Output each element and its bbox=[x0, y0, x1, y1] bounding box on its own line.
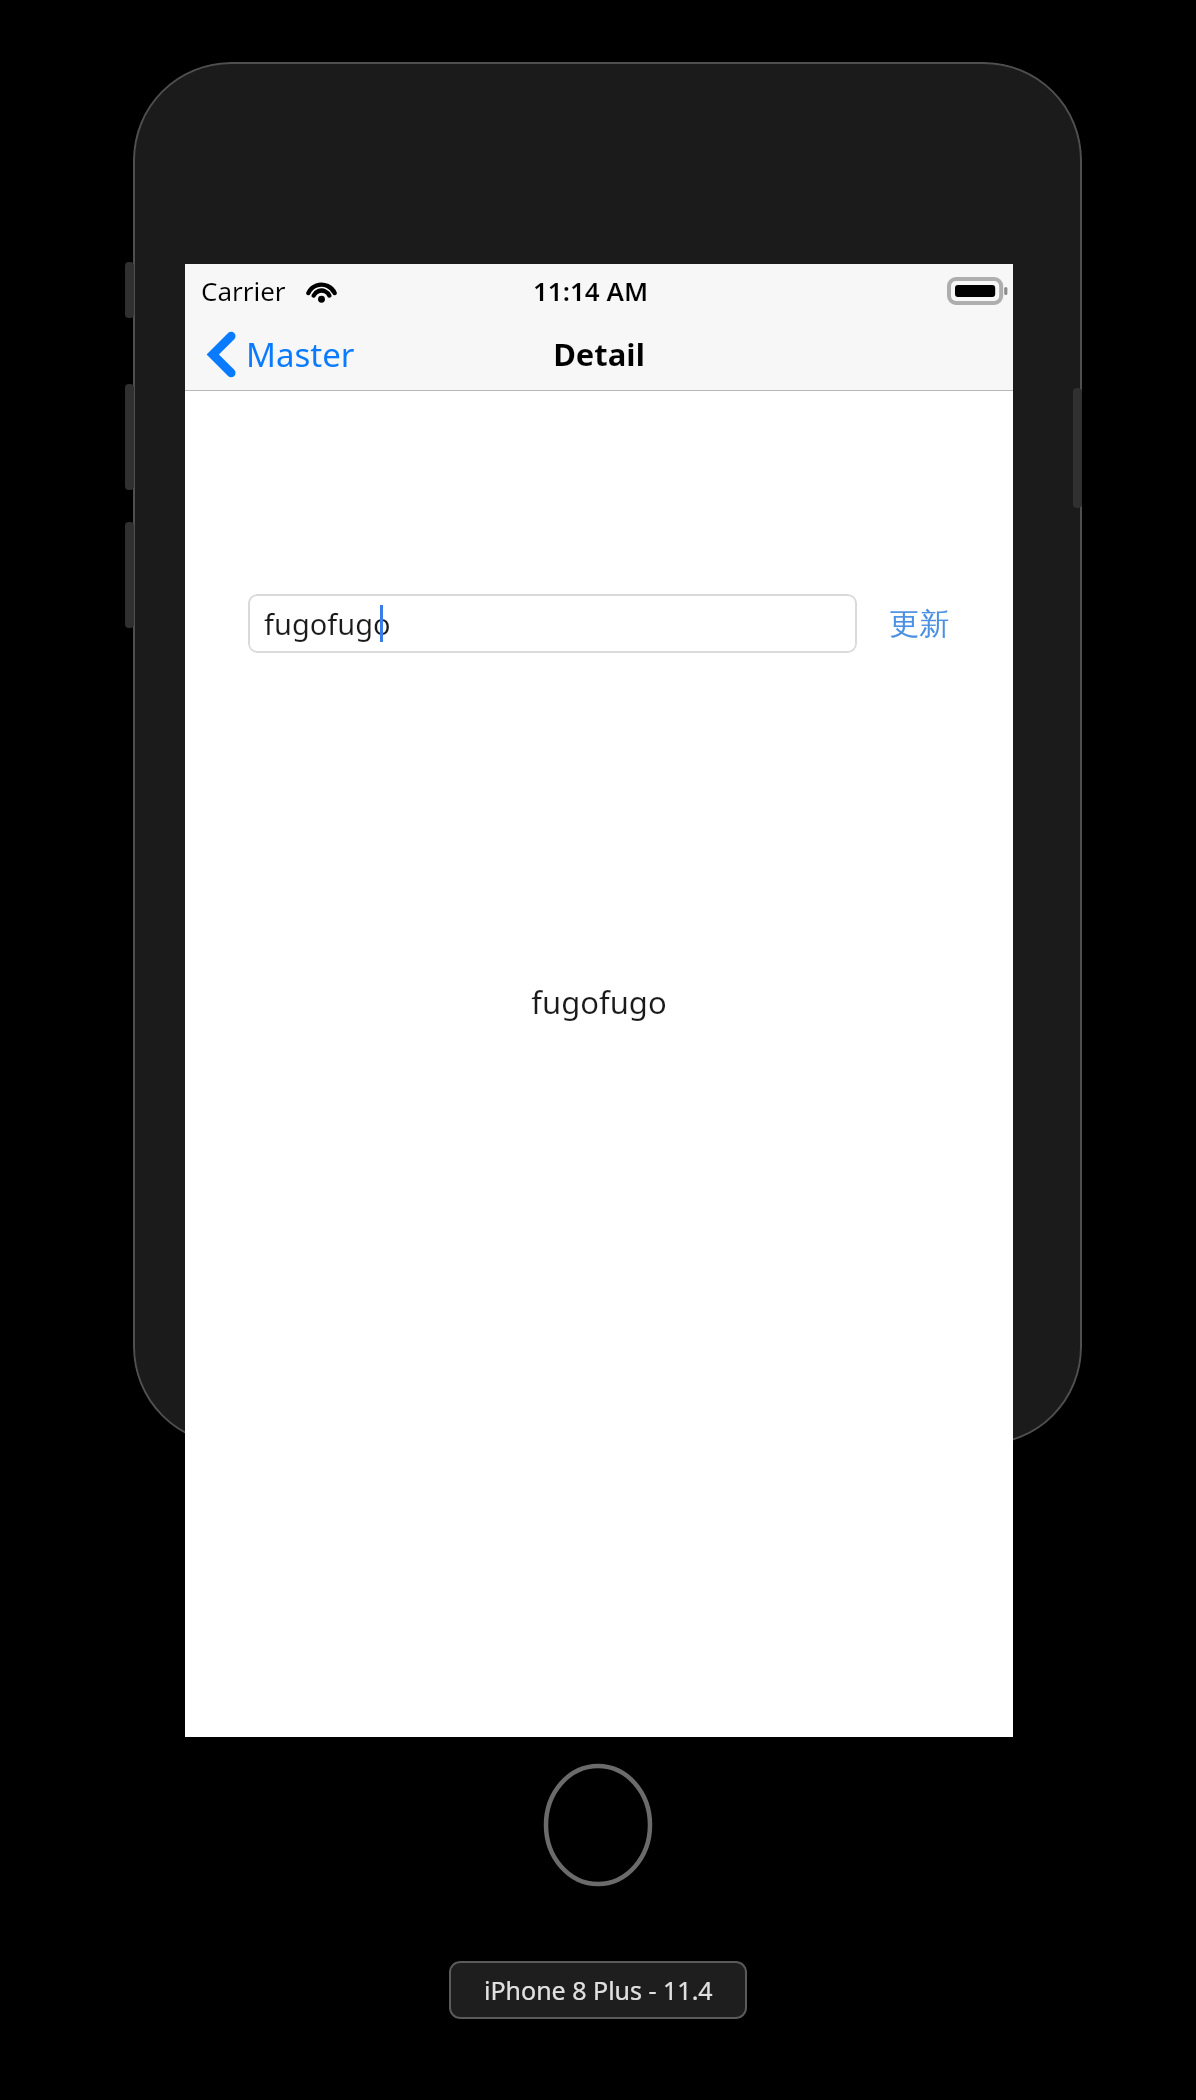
staticText: Carrier bbox=[201, 273, 286, 308]
other: Battery full bbox=[949, 276, 1007, 306]
other: Wi-Fi signal bbox=[306, 279, 337, 302]
staticText: fugofugo bbox=[264, 604, 391, 643]
button[interactable]: 更新 bbox=[875, 594, 963, 653]
staticText: 更新 bbox=[889, 605, 949, 643]
staticText: Master bbox=[246, 332, 355, 377]
staticText: fugofugo bbox=[531, 981, 667, 1023]
staticText: Detail bbox=[553, 333, 645, 375]
staticText: iPhone 8 Plus - 11.4 bbox=[484, 1973, 713, 2007]
staticText: 11:14 AM bbox=[533, 273, 649, 308]
button[interactable]: fugofugo bbox=[248, 594, 857, 653]
button[interactable]: Master bbox=[199, 317, 369, 391]
